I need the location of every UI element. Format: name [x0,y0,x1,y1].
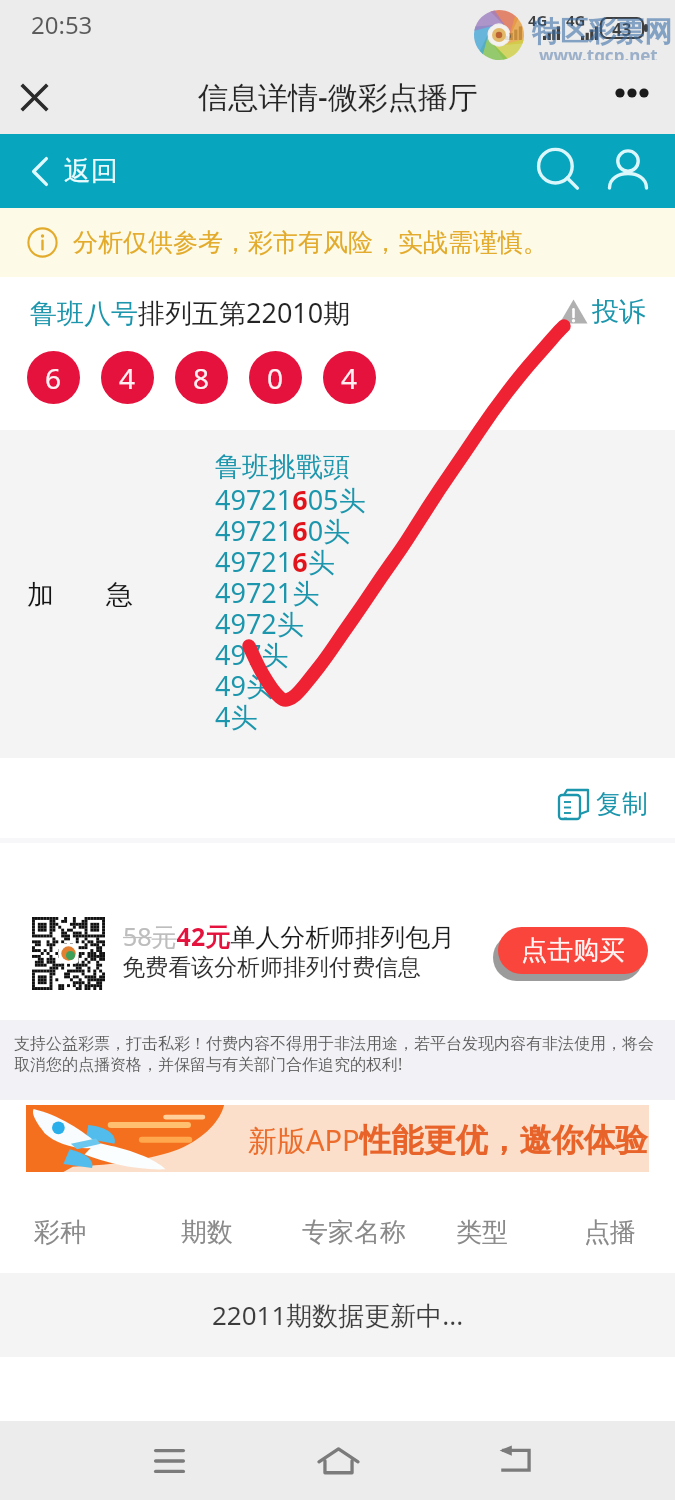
staticText: 点播 [584,1216,636,1249]
staticText: 加 [27,578,54,612]
staticText: 特区彩票网 [532,14,672,49]
staticText: 专家名称 [302,1216,406,1249]
staticText: 彩种 [34,1216,86,1249]
staticText: 22011期数据更新中... [212,1297,464,1333]
staticText: 4头 [215,698,258,735]
staticText: 58元42元单人分析师排列包月 [123,919,456,953]
staticText: 8 [193,359,210,397]
staticText: 497216头 [215,543,335,580]
staticText: 4 [341,359,358,397]
button[interactable]: 返回 [32,134,118,208]
button[interactable]: 期数 [165,1192,249,1273]
button[interactable]: Close [0,63,68,131]
staticText: 复制 [596,788,648,821]
staticText: 取消您的点播资格，并保留与有关部门合作追究的权利! [14,1053,403,1075]
staticText: 0 [267,359,284,397]
staticText: 信息详情-微彩点播厅 [198,76,478,117]
staticText: 49721头 [215,574,320,611]
button[interactable]: Recent apps [139,1431,199,1491]
staticText: 支持公益彩票，打击私彩！付费内容不得用于非法用途，若平台发现内容有非法使用，将会 [14,1034,654,1054]
button[interactable]: 类型 [440,1192,524,1273]
staticText: 投诉 [592,295,646,329]
button[interactable]: 投诉 [558,290,646,333]
staticText: 4 [119,359,136,397]
button[interactable]: 新版APP性能更优，邀你体验 [26,1105,649,1172]
staticText: 49721605头 [215,481,366,518]
button[interactable]: 复制 [556,784,648,824]
staticText: 期数 [181,1216,233,1249]
staticText: 4972160头 [215,512,351,549]
button[interactable]: Home [308,1431,368,1491]
staticText: 20:53 [31,8,93,41]
staticText: 497头 [215,636,289,673]
staticText: 鲁班挑戰頭 [215,450,350,484]
button[interactable]: 点播 [568,1192,652,1273]
button[interactable]: 专家名称 [286,1192,422,1273]
staticText: 新版APP性能更优，邀你体验 [248,1120,648,1161]
staticText: 4972头 [215,605,304,642]
button[interactable]: Account [591,134,665,208]
staticText: 4G [566,10,586,30]
staticText: 免费看该分析师排列付费信息 [122,953,421,982]
staticText: 急 [106,578,133,612]
button[interactable]: More options [598,59,666,127]
staticText: 4G [528,10,548,30]
staticText: 49头 [215,667,273,704]
staticText: www.tqcp.net [539,44,658,67]
staticText: 返回 [64,154,118,188]
staticText: 6 [45,359,62,397]
button[interactable]: Search [523,134,597,208]
staticText: 43 [612,18,632,41]
button[interactable]: 彩种 [18,1192,102,1273]
staticText: 鲁班八号排列五第22010期 [30,294,351,331]
staticText: 类型 [456,1216,508,1249]
staticText: 分析仅供参考，彩市有风险，实战需谨慎。 [73,227,548,258]
staticText: 点击购买 [521,934,625,967]
button[interactable]: 点击购买 [498,927,648,974]
button[interactable]: Back [485,1429,545,1489]
